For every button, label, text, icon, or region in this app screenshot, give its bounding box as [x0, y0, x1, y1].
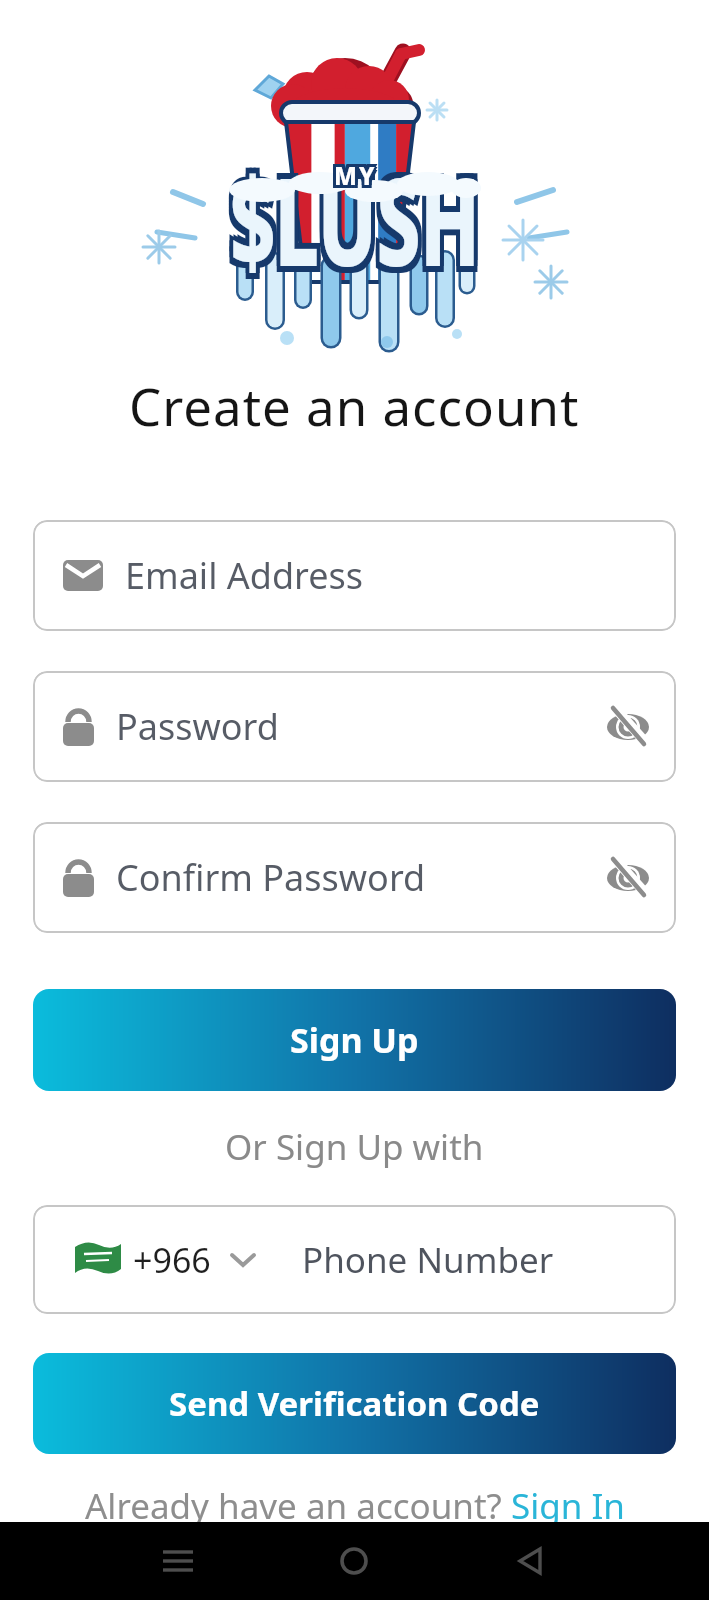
staticText: $LUSH — [226, 137, 476, 303]
staticText: Email Address — [125, 551, 364, 600]
button[interactable] — [319, 1526, 389, 1596]
staticText: $LUSH — [230, 131, 480, 297]
button[interactable] — [495, 1526, 565, 1596]
button[interactable]: Already have an account? — [85, 1482, 625, 1530]
staticText: $LUSH — [230, 137, 480, 303]
staticText: $LUSH — [234, 137, 484, 303]
button[interactable]: Send Verification Code — [33, 1353, 676, 1454]
staticText: +966 — [133, 1237, 211, 1283]
staticText: MY — [331, 159, 374, 192]
staticText: $LUSH — [226, 131, 476, 297]
staticText: $LUSH — [226, 143, 476, 309]
button[interactable]: Email Address — [33, 520, 676, 631]
staticText: Sign In — [511, 1482, 625, 1530]
staticText: MY — [334, 162, 377, 195]
staticText: MY — [337, 162, 380, 195]
staticText: Sign Up — [290, 1017, 419, 1063]
staticText: $LUSH — [234, 143, 484, 309]
staticText: Already have an account? — [85, 1482, 511, 1530]
staticText: Send Verification Code — [169, 1381, 540, 1426]
staticText: MY — [331, 156, 374, 189]
staticText: MY — [337, 156, 380, 189]
button[interactable]: +966 — [33, 1205, 676, 1314]
staticText: Password — [116, 702, 279, 751]
button[interactable] — [143, 1526, 213, 1596]
staticText: Phone Number — [302, 1236, 554, 1284]
button[interactable]: Password — [33, 671, 676, 782]
staticText: MY — [337, 159, 380, 192]
staticText: $LUSH — [234, 131, 484, 297]
staticText: $LUSH — [230, 143, 480, 309]
button[interactable]: Confirm Password — [33, 822, 676, 933]
staticText: MY — [334, 159, 377, 192]
staticText: MY — [331, 162, 374, 195]
staticText: MY — [334, 156, 377, 189]
staticText: Confirm Password — [116, 853, 426, 902]
staticText: Create an account — [129, 371, 580, 440]
button[interactable]: Sign Up — [33, 989, 676, 1091]
staticText: Or Sign Up with — [225, 1123, 484, 1171]
